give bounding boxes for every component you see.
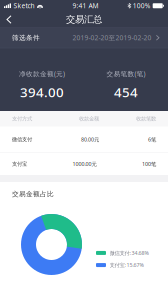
staticText: 9:41 AM — [72, 1, 98, 10]
staticText: 100% — [133, 1, 151, 10]
staticText: 交易汇总 — [66, 14, 102, 25]
staticText: 收款笔数 — [136, 115, 156, 122]
staticText: Sketch — [13, 1, 34, 10]
staticText: 微信支付 — [12, 136, 32, 143]
staticText: 筛选条件 — [12, 34, 40, 42]
staticText: 支付宝 — [12, 161, 27, 167]
staticText: 交易笔数(笔) — [106, 69, 145, 78]
staticText: 收款金额 — [79, 115, 99, 122]
staticText: 80.00元 — [81, 136, 99, 143]
staticText: 2019-02-20至2019-02-20 — [72, 33, 151, 42]
button[interactable]: 筛选条件 — [0, 28, 168, 48]
staticText: 交易金额占比 — [12, 190, 54, 198]
staticText: 100笔 — [142, 160, 156, 168]
staticText: 净收款金额(元) — [19, 69, 65, 78]
staticText: 454 — [114, 83, 138, 101]
staticText: 6笔 — [148, 136, 156, 143]
staticText: 支付方式 — [12, 115, 32, 122]
staticText: 394.00 — [20, 83, 64, 101]
button[interactable]: Back — [0, 12, 19, 27]
staticText: 1000.00元 — [72, 160, 96, 168]
staticText: 支付宝: 15.67% — [109, 261, 143, 269]
staticText: 微信支付: 34.68% — [109, 249, 148, 256]
